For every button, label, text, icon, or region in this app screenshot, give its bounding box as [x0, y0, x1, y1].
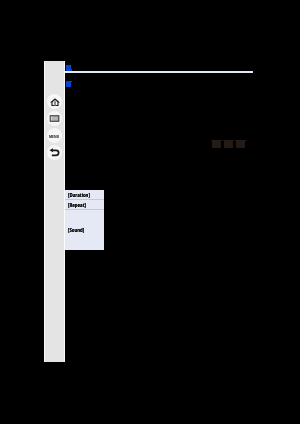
staticText: [Sound]: [68, 227, 85, 233]
staticText: [Repeat]: [68, 202, 86, 208]
button[interactable]: [Duration]: [65, 190, 104, 199]
staticText: [Sound]: [68, 227, 85, 233]
staticText: MENU: [49, 134, 60, 138]
staticText: [Duration]: [68, 192, 90, 198]
staticText: [Repeat]: [68, 202, 86, 208]
staticText: [Repeat]: [68, 202, 86, 208]
button[interactable]: [Repeat]: [65, 200, 104, 209]
button[interactable]: Menu: [47, 128, 62, 143]
button[interactable]: Home: [47, 94, 62, 109]
staticText: MENU: [49, 134, 60, 138]
button[interactable]: Display: [47, 111, 62, 126]
button[interactable]: [Sound]: [65, 210, 104, 250]
staticText: [Sound]: [68, 227, 85, 233]
staticText: [Duration]: [68, 192, 90, 198]
staticText: [Duration]: [68, 192, 90, 198]
button[interactable]: Back: [47, 145, 62, 160]
